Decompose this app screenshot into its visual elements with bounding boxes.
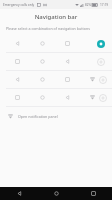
staticText: 82% xyxy=(85,3,91,7)
staticText: Navigation bar xyxy=(0,13,112,21)
button[interactable] xyxy=(0,53,112,70)
button[interactable] xyxy=(0,71,112,88)
button[interactable] xyxy=(0,35,112,52)
button[interactable]: Recent apps xyxy=(75,187,112,200)
button[interactable]: Back xyxy=(0,187,38,200)
button[interactable]: Home xyxy=(38,187,75,200)
button[interactable] xyxy=(0,89,112,106)
staticText: Open notification panel xyxy=(18,114,58,119)
staticText: 17:19 xyxy=(100,3,109,7)
staticText: Please select a combination of navigatio… xyxy=(6,26,106,31)
staticText: Emergency calls only xyxy=(3,3,35,7)
